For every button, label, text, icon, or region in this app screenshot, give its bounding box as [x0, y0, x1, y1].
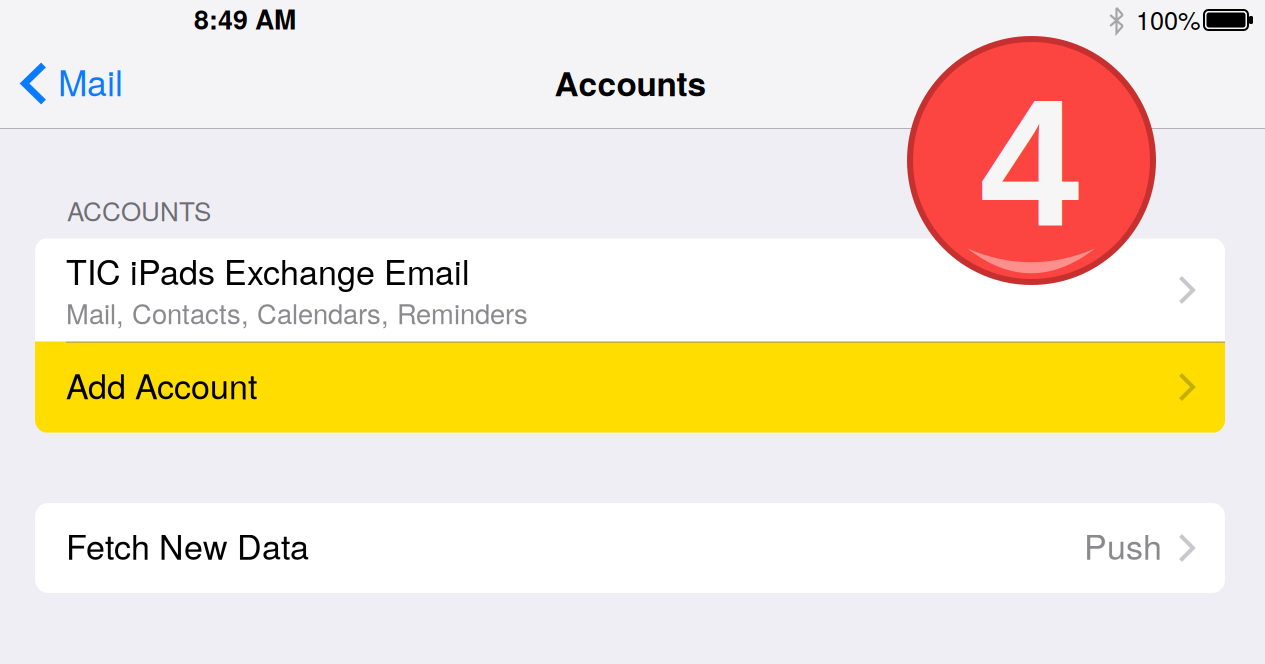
staticText: 4 [979, 62, 1079, 263]
button[interactable]: TIC iPads Exchange Email [35, 238, 1225, 341]
button[interactable]: Mail [0, 41, 150, 128]
staticText: Push [1084, 521, 1162, 569]
staticText: Mail [58, 56, 123, 106]
staticText: 100% [1136, 1, 1201, 37]
staticText: ACCOUNTS [67, 191, 211, 229]
staticText: TIC iPads Exchange Email [66, 246, 470, 295]
staticText: Accounts [554, 59, 706, 106]
staticText: 8:49 AM [194, 0, 296, 38]
staticText: Add Account [66, 360, 257, 409]
staticText: Mail, Contacts, Calendars, Reminders [66, 293, 528, 332]
button[interactable]: Add Account [35, 341, 1225, 432]
staticText: Fetch New Data [66, 521, 309, 569]
button[interactable]: Fetch New Data [35, 503, 1225, 593]
